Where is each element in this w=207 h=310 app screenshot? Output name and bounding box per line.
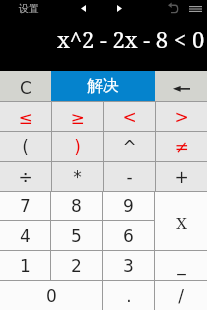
staticText: x^2 - 2x - 8 < 0 [57,24,205,54]
button[interactable]: ( [0,132,51,161]
button[interactable]: 5 [51,221,102,250]
staticText: 3 [123,256,134,276]
staticText: + [174,167,189,187]
button[interactable]: Menu [189,6,202,12]
staticText: X [176,215,187,232]
button[interactable]: ≠ [156,132,207,161]
button[interactable]: 4 [0,221,50,250]
staticText: ^ [122,137,137,157]
staticText: > [174,107,189,127]
staticText: 9 [123,196,134,216]
staticText: 5 [71,226,82,246]
staticText: - [126,167,133,187]
staticText: ≤ [18,108,33,128]
staticText: 0 [46,286,57,306]
staticText: C [20,78,32,98]
staticText: 7 [20,196,31,216]
staticText: < [122,107,137,127]
staticText: 8 [71,196,82,216]
button[interactable]: Previous [81,5,86,12]
button[interactable]: < [104,102,155,131]
button[interactable]: 7 [0,192,50,220]
button[interactable]: . [103,281,154,310]
button[interactable]: ) [52,132,103,161]
button[interactable]: 3 [103,251,154,280]
staticText: . [126,286,132,306]
staticText: ≠ [174,137,189,157]
staticText: / [178,286,184,306]
button[interactable]: Next [117,5,122,12]
button[interactable]: ÷ [0,162,51,191]
staticText: ( [22,137,29,157]
button[interactable]: C [0,71,51,101]
button[interactable]: 0 [0,281,102,310]
button[interactable]: 6 [103,221,154,250]
button[interactable]: _ [155,251,207,280]
staticText: ÷ [18,167,33,187]
button[interactable]: 8 [51,192,102,220]
staticText: 6 [123,226,134,246]
button[interactable]: ^ [104,132,155,161]
staticText: 4 [20,226,31,246]
staticText: ) [74,137,81,157]
button[interactable]: - [104,162,155,191]
staticText: 1 [20,256,31,276]
button[interactable]: > [156,102,207,131]
button[interactable]: X [155,192,207,250]
button[interactable]: / [155,281,207,310]
button[interactable]: 设置 [19,2,39,15]
button[interactable]: 1 [0,251,50,280]
button[interactable]: ≤ [0,102,51,131]
button[interactable]: Backspace [155,71,207,101]
button[interactable]: 2 [51,251,102,280]
staticText: 2 [71,256,82,276]
button[interactable]: ≥ [52,102,103,131]
staticText: 解决 [87,76,119,96]
button[interactable]: + [156,162,207,191]
staticText: ≥ [70,108,85,128]
staticText: _ [177,255,186,275]
button[interactable]: 9 [103,192,154,220]
button[interactable]: Undo [168,4,178,13]
staticText: * [73,167,82,187]
button[interactable]: * [52,162,103,191]
button[interactable]: 解决 [51,71,155,101]
